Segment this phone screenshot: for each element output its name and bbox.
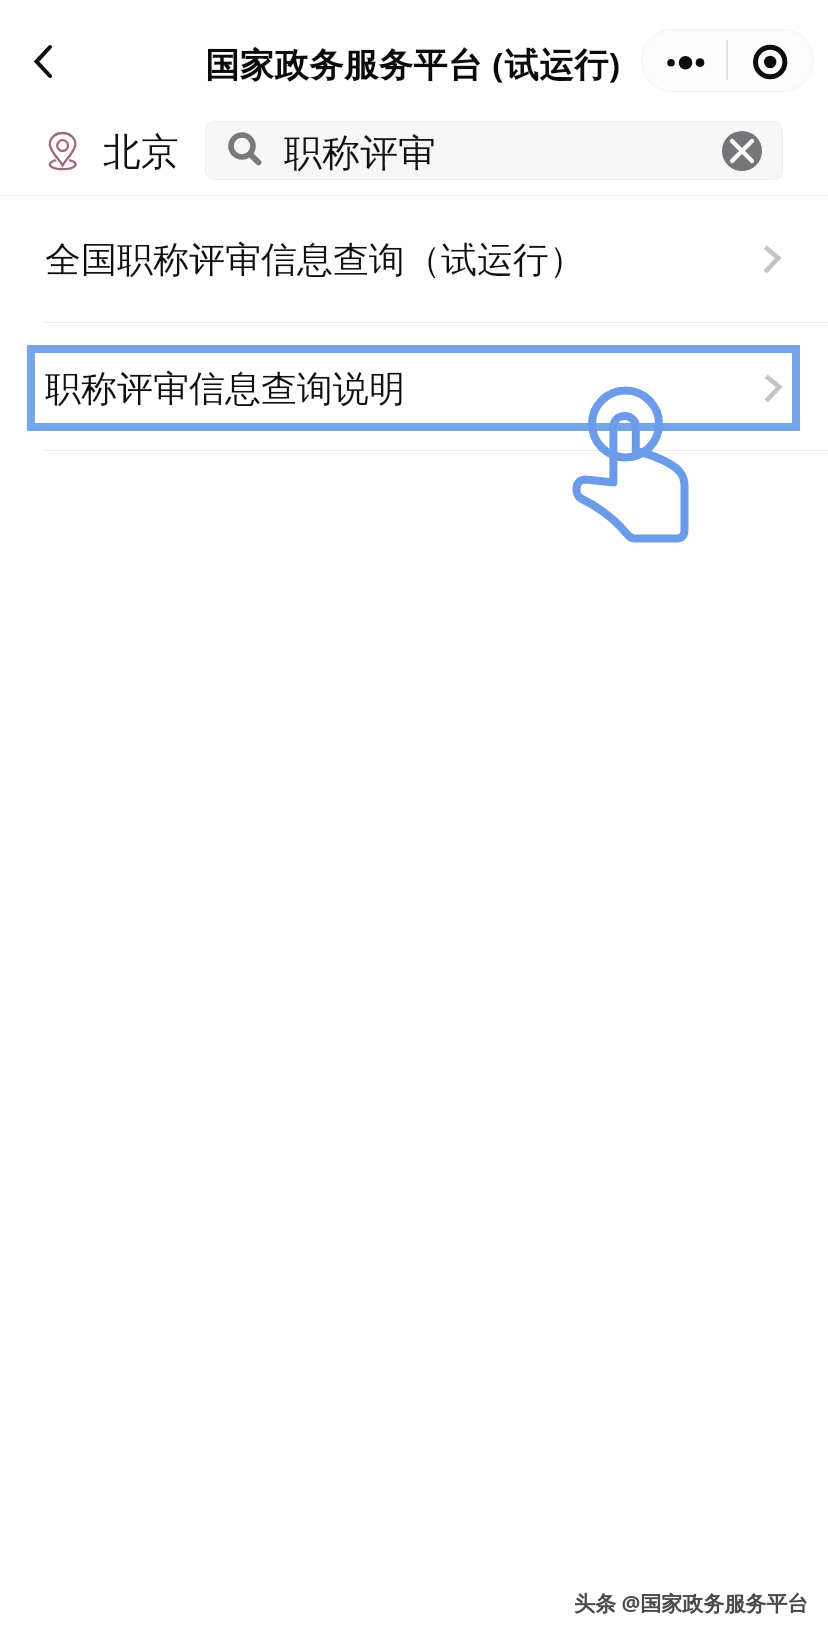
button[interactable]: 全国职称评审信息查询（试运行）	[0, 196, 828, 322]
button[interactable]: Close mini program	[727, 29, 814, 92]
staticText: 北京	[103, 128, 179, 174]
staticText: 头条 @国家政务服务平台	[574, 1589, 809, 1618]
button[interactable]: Back	[6, 26, 78, 98]
button[interactable]: 职称评审	[205, 121, 783, 180]
staticText: 头条 @国家政务服务平台	[576, 1591, 811, 1620]
staticText: 全国职称评审信息查询（试运行）	[45, 237, 585, 282]
button[interactable]: 职称评审信息查询说明	[35, 353, 792, 423]
staticText: 职称评审	[284, 129, 436, 177]
staticText: 职称评审信息查询说明	[45, 366, 405, 411]
button[interactable]: Clear search	[711, 121, 773, 180]
staticText: 国家政务服务平台 (试运行)	[205, 41, 621, 87]
button[interactable]: More options	[641, 29, 727, 92]
button[interactable]: 北京	[49, 128, 179, 174]
